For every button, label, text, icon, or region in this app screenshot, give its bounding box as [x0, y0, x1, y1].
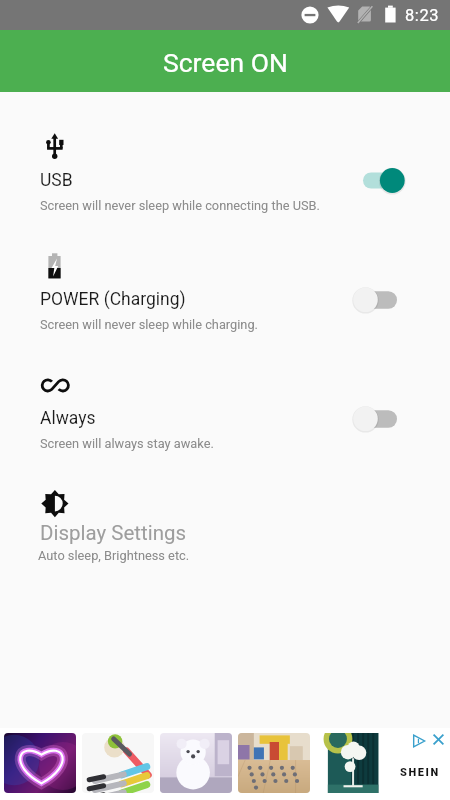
staticText: Screen will never sleep while charging. [40, 317, 258, 332]
staticText: Screen will always stay awake. [40, 436, 214, 451]
button[interactable]: POWER (Charging) [0, 238, 450, 357]
staticText: Display Settings [40, 521, 187, 545]
button[interactable]: Ad image [238, 733, 310, 793]
button[interactable]: Close ad [433, 734, 444, 745]
button[interactable]: Ad image [82, 733, 154, 793]
button[interactable]: Display Settings [0, 476, 450, 586]
button[interactable]: Ad image [160, 733, 232, 793]
button[interactable]: Switch on [349, 163, 401, 195]
staticText: POWER (Charging) [40, 289, 186, 310]
button[interactable]: Switch off [349, 282, 401, 314]
button[interactable]: Ad choices [412, 734, 426, 748]
button[interactable]: Switch off [349, 401, 401, 433]
button[interactable]: USB [0, 119, 450, 238]
button[interactable]: Ad image [4, 733, 76, 793]
staticText: Screen ON [163, 47, 288, 78]
button[interactable]: Ad image [316, 733, 388, 793]
staticText: Always [40, 408, 96, 429]
staticText: Auto sleep, Brightness etc. [38, 548, 190, 563]
staticText: SHEIN [400, 766, 440, 779]
staticText: 8:23 [405, 6, 440, 25]
staticText: Screen will never sleep while connecting… [40, 198, 320, 213]
button[interactable]: Always [0, 357, 450, 476]
staticText: USB [40, 170, 73, 191]
